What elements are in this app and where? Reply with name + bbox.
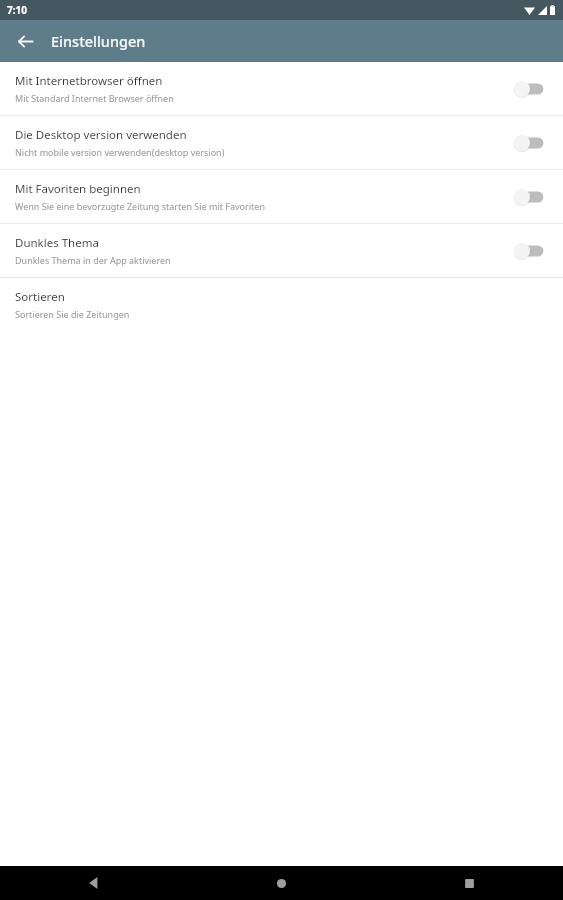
staticText: Wenn Sie eine bevorzugte Zeitung starten…: [15, 200, 265, 212]
button[interactable]: Umschalten: [509, 130, 549, 156]
staticText: Einstellungen: [51, 31, 146, 51]
staticText: 7:10: [7, 3, 27, 17]
button[interactable]: Umschalten: [509, 238, 549, 264]
button[interactable]: Umschalten: [509, 76, 549, 102]
staticText: Sortieren: [15, 289, 65, 305]
staticText: Mit Internetbrowser öffnen: [15, 73, 163, 89]
staticText: Die Desktop version verwenden: [15, 127, 187, 143]
staticText: Sortieren Sie die Zeitungen: [15, 308, 130, 320]
button[interactable]: Letzte Apps: [375, 866, 563, 900]
staticText: Mit Favoriten beginnen: [15, 181, 141, 197]
button[interactable]: Mit Favoriten beginnen: [0, 170, 563, 223]
staticText: Mit Standard Internet Browser öffnen: [15, 92, 174, 104]
staticText: Dunkles Thema in der App aktivieren: [15, 254, 171, 266]
button[interactable]: Zurück: [0, 866, 187, 900]
button[interactable]: Dunkles Thema: [0, 224, 563, 277]
staticText: Nicht mobile version verwenden(desktop v…: [15, 146, 225, 158]
button[interactable]: Die Desktop version verwenden: [0, 116, 563, 169]
staticText: Dunkles Thema: [15, 235, 99, 251]
button[interactable]: Umschalten: [509, 184, 549, 210]
button[interactable]: Startseite: [187, 866, 375, 900]
button[interactable]: Zurück: [8, 24, 42, 58]
button[interactable]: Sortieren: [0, 278, 563, 331]
button[interactable]: Mit Internetbrowser öffnen: [0, 62, 563, 115]
